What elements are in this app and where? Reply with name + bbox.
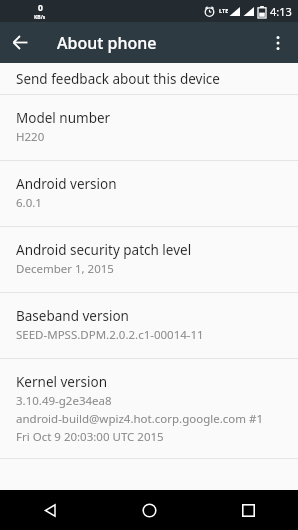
staticText: Model number — [16, 109, 111, 127]
button[interactable]: Android version — [0, 161, 298, 226]
staticText: SEED-MPSS.DPM.2.0.2.c1-00014-11 — [16, 327, 204, 343]
staticText: About phone — [57, 32, 157, 54]
staticText: Fri Oct 9 20:03:00 UTC 2015 — [16, 429, 164, 445]
button[interactable]: More options — [257, 22, 298, 63]
staticText: 6.0.1 — [16, 195, 42, 211]
staticText: 4:13 — [270, 4, 292, 19]
staticText: LTE — [219, 7, 229, 14]
staticText: H220 — [16, 129, 45, 145]
staticText: android-build@wpiz4.hot.corp.google.com … — [16, 411, 264, 427]
staticText: Send feedback about this device — [16, 70, 220, 88]
staticText: Android version — [16, 175, 117, 193]
staticText: Kernel version — [16, 373, 108, 391]
staticText: Android security patch level — [16, 241, 192, 259]
button[interactable]: Baseband version — [0, 293, 298, 358]
staticText: 0 — [38, 2, 43, 14]
button[interactable]: Android security patch level — [0, 227, 298, 292]
button[interactable]: Kernel version — [0, 359, 298, 458]
button[interactable]: Home — [100, 490, 199, 530]
staticText: December 1, 2015 — [16, 261, 114, 277]
staticText: KB/s — [34, 14, 46, 21]
button[interactable]: Navigate up — [0, 22, 41, 63]
staticText: Baseband version — [16, 307, 129, 325]
button[interactable]: Back — [0, 490, 100, 530]
staticText: 3.10.49-g2e34ea8 — [16, 393, 112, 409]
button[interactable]: Model number — [0, 95, 298, 160]
button[interactable]: Send feedback about this device — [0, 63, 298, 94]
button[interactable]: Recent apps — [199, 490, 298, 530]
